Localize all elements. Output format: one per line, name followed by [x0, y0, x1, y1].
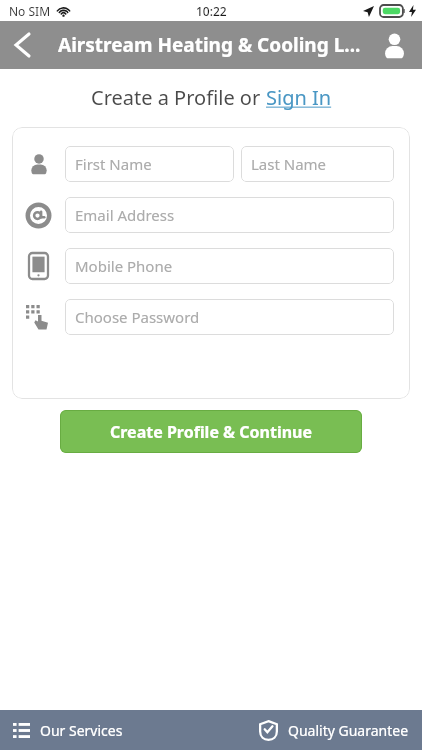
- staticText: Quality Guarantee: [288, 721, 409, 740]
- staticText: Sign In: [266, 84, 332, 111]
- staticText: Airstream Heating & Cooling L...: [58, 32, 361, 58]
- button[interactable]: Last Name: [241, 146, 394, 182]
- staticText: 10:22: [196, 3, 227, 19]
- button[interactable]: Mobile Phone: [65, 248, 394, 284]
- button[interactable]: Create Profile & Continue: [60, 410, 362, 453]
- staticText: Choose Password: [75, 307, 200, 327]
- staticText: Email Address: [75, 205, 175, 225]
- staticText: Our Services: [40, 721, 123, 740]
- button[interactable]: Choose Password: [65, 299, 394, 335]
- button[interactable]: Email Address: [65, 197, 394, 233]
- staticText: Create a Profile or: [91, 84, 266, 111]
- staticText: Create Profile & Continue: [110, 421, 313, 443]
- button[interactable]: Our Services: [0, 710, 133, 750]
- button[interactable]: Quality Guarantee: [249, 710, 422, 750]
- button[interactable]: Account: [374, 25, 414, 65]
- staticText: Mobile Phone: [75, 256, 173, 276]
- staticText: No SIM: [9, 3, 51, 19]
- staticText: First Name: [75, 154, 152, 174]
- button[interactable]: Back: [0, 23, 44, 67]
- button[interactable]: First Name: [65, 146, 234, 182]
- staticText: Last Name: [251, 154, 327, 174]
- button[interactable]: Sign In: [266, 84, 332, 111]
